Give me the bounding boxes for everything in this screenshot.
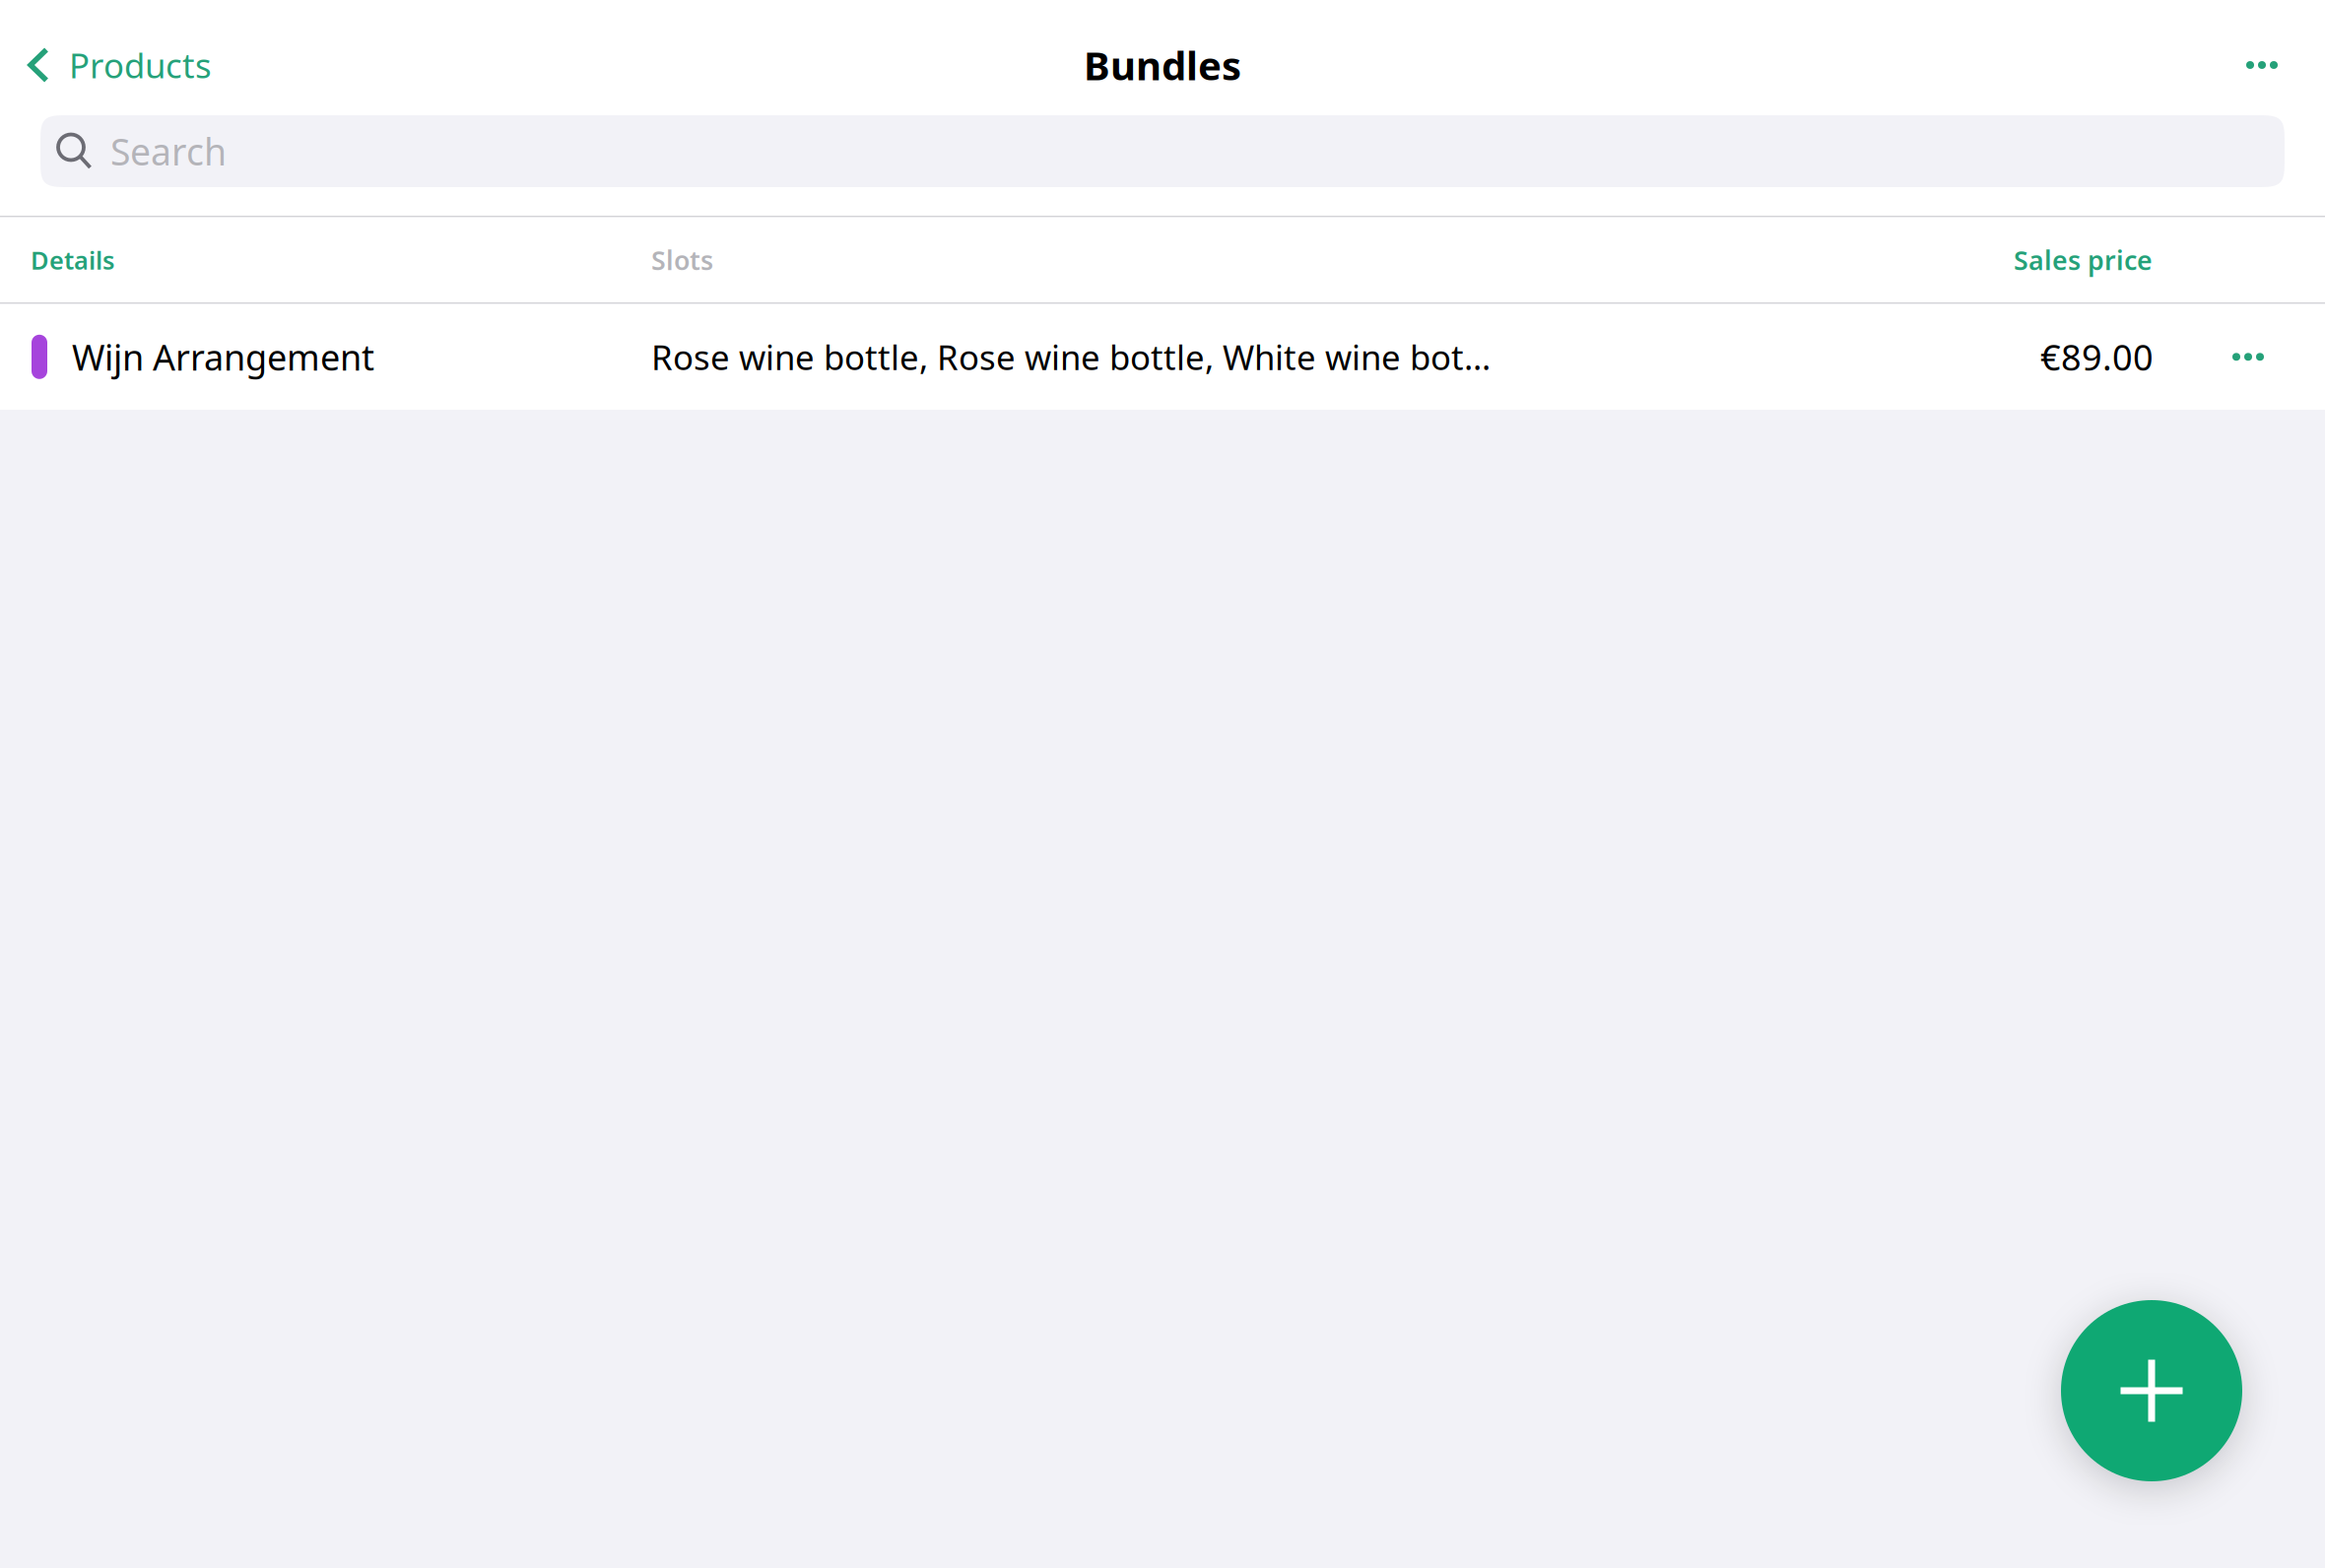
staticText: Sales price: [2014, 242, 2153, 277]
button[interactable]: Products: [0, 0, 235, 130]
button[interactable]: Search: [40, 115, 2285, 187]
staticText: Bundles: [1084, 39, 1241, 91]
button[interactable]: Wijn Arrangement: [0, 304, 2325, 410]
staticText: Search: [110, 127, 227, 176]
button[interactable]: More options: [2203, 0, 2325, 130]
staticText: Wijn Arrangement: [72, 333, 374, 380]
staticText: Products: [69, 42, 212, 88]
staticText: Details: [31, 243, 114, 276]
staticText: Rose wine bottle, Rose wine bottle, Whit…: [651, 334, 1491, 379]
staticText: €89.00: [2040, 333, 2154, 380]
staticText: Slots: [651, 242, 713, 277]
button[interactable]: Add bundle: [2056, 1300, 2247, 1481]
